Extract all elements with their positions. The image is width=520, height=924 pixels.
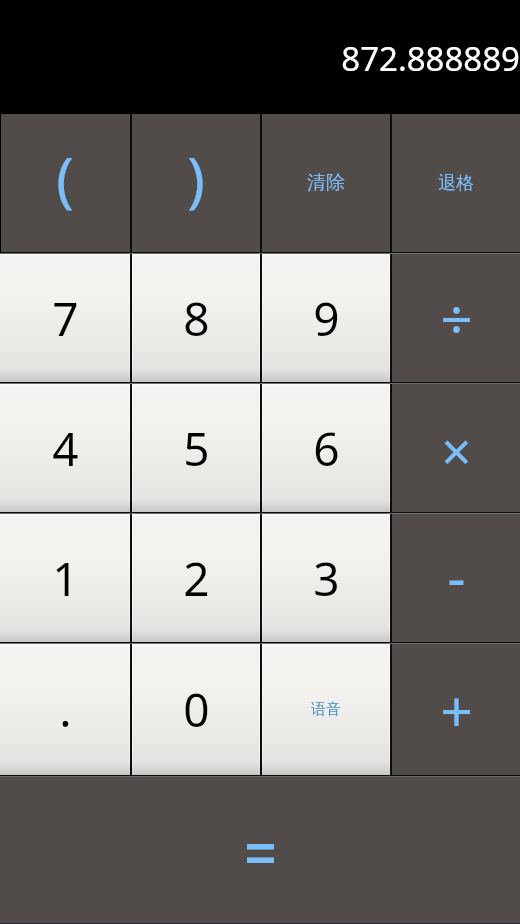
- button[interactable]: 3: [262, 514, 390, 642]
- button[interactable]: 语音: [262, 644, 390, 775]
- staticText: .: [59, 678, 72, 741]
- staticText: ÷: [440, 279, 473, 357]
- button[interactable]: 0: [132, 644, 260, 775]
- staticText: ×: [441, 414, 472, 486]
- staticText: 6: [313, 417, 340, 480]
- staticText: 872.888889: [341, 36, 520, 81]
- button[interactable]: Multiply: [392, 384, 520, 512]
- staticText: 5: [183, 417, 210, 480]
- staticText: +: [440, 671, 473, 749]
- staticText: ): [187, 137, 205, 219]
- staticText: 2: [183, 547, 210, 610]
- button[interactable]: 8: [132, 254, 260, 382]
- staticText: 9: [313, 287, 340, 350]
- button[interactable]: ): [132, 114, 260, 252]
- button[interactable]: 4: [0, 384, 130, 512]
- staticText: -: [447, 537, 466, 615]
- button[interactable]: 6: [262, 384, 390, 512]
- button[interactable]: Minus: [392, 514, 520, 642]
- button[interactable]: 1: [0, 514, 130, 642]
- staticText: 退格: [438, 172, 474, 195]
- button[interactable]: 退格: [392, 114, 520, 252]
- button[interactable]: 2: [132, 514, 260, 642]
- staticText: 1: [52, 547, 79, 610]
- button[interactable]: Equals: [0, 777, 520, 924]
- staticText: 清除: [307, 171, 345, 195]
- staticText: 3: [313, 547, 340, 610]
- button[interactable]: Divide: [392, 254, 520, 382]
- button[interactable]: .: [0, 644, 130, 775]
- button[interactable]: (: [0, 114, 130, 252]
- button[interactable]: +: [392, 644, 520, 775]
- staticText: 7: [52, 287, 79, 350]
- staticText: (: [56, 137, 74, 219]
- button[interactable]: 7: [0, 254, 130, 382]
- staticText: 0: [183, 678, 210, 741]
- staticText: 4: [52, 417, 79, 480]
- button[interactable]: 清除: [262, 114, 390, 252]
- staticText: 语音: [311, 700, 341, 719]
- button[interactable]: 5: [132, 384, 260, 512]
- staticText: 8: [183, 287, 210, 350]
- button[interactable]: 9: [262, 254, 390, 382]
